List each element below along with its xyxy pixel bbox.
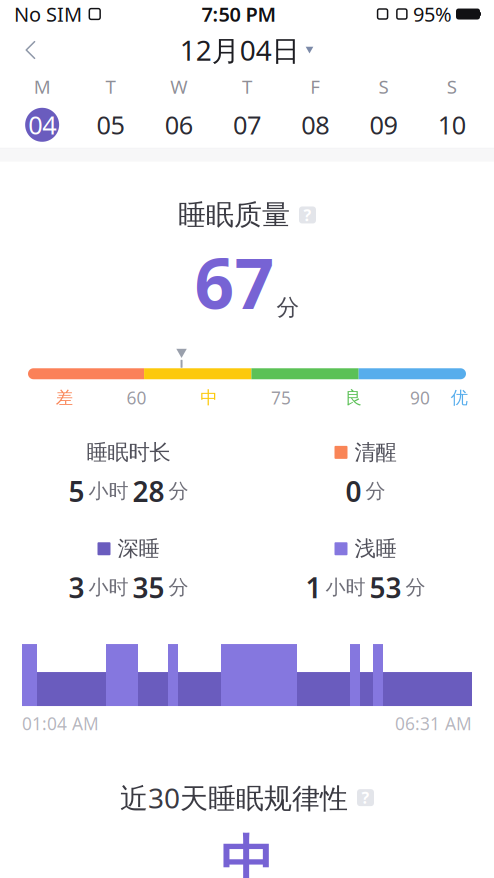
staticText: 分 [276, 293, 299, 321]
staticText: 睡眠质量 [178, 198, 290, 232]
button[interactable]: T [76, 74, 145, 142]
staticText: 小时 [88, 479, 128, 503]
button[interactable]: S [418, 74, 486, 142]
staticText: 05 [96, 108, 124, 142]
staticText: 浅睡 [354, 536, 396, 562]
staticText: 近30天睡眠规律性 [120, 779, 348, 816]
staticText: 10 [438, 108, 466, 142]
staticText: 小时 [88, 575, 128, 600]
staticText: 分 [405, 575, 425, 600]
staticText: 中 [220, 828, 273, 878]
staticText: 06 [165, 108, 193, 142]
button[interactable]: Back [8, 28, 54, 72]
button[interactable]: Help [299, 206, 316, 223]
staticText: 08 [301, 108, 329, 142]
staticText: 小时 [325, 575, 365, 600]
staticText: 90 [410, 386, 430, 409]
staticText: 7:50 PM [201, 1, 276, 27]
staticText: T [242, 74, 252, 99]
staticText: 04 [28, 108, 56, 142]
staticText: 0 [345, 472, 361, 510]
staticText: No SIM [14, 1, 82, 27]
staticText: S [379, 74, 389, 99]
staticText: 06:31 AM [395, 712, 472, 735]
staticText: 中 [200, 387, 217, 408]
staticText: 清醒 [354, 439, 396, 465]
staticText: 01:04 AM [22, 712, 99, 735]
staticText: 35 [132, 569, 164, 606]
button[interactable]: 12月04日 [174, 25, 320, 75]
button[interactable]: W [145, 74, 213, 142]
staticText: T [105, 74, 115, 99]
staticText: 3 [68, 569, 84, 606]
button[interactable]: S [349, 74, 418, 142]
staticText: 95% [413, 1, 452, 27]
staticText: 睡眠时长 [86, 439, 170, 465]
staticText: 60 [126, 386, 146, 409]
staticText: 09 [370, 108, 398, 142]
staticText: 良 [345, 387, 362, 408]
staticText: ? [361, 787, 369, 808]
button[interactable]: M [8, 74, 76, 142]
staticText: ? [303, 204, 311, 226]
button[interactable]: T [213, 74, 281, 142]
staticText: 5 [68, 472, 84, 510]
staticText: F [310, 74, 320, 99]
staticText: S [447, 74, 457, 99]
staticText: 07 [233, 108, 261, 142]
staticText: 28 [132, 472, 164, 510]
staticText: 67 [194, 236, 274, 328]
staticText: 优 [451, 387, 466, 408]
staticText: W [170, 74, 187, 99]
staticText: 深睡 [117, 536, 159, 562]
staticText: 12月04日 [180, 31, 300, 69]
staticText: M [34, 74, 51, 99]
staticText: 分 [168, 479, 188, 503]
button[interactable]: F [281, 74, 349, 142]
staticText: 1 [305, 569, 321, 606]
staticText: 分 [365, 479, 385, 503]
staticText: 分 [168, 575, 188, 600]
button[interactable]: Help [357, 789, 374, 806]
staticText: 53 [369, 569, 401, 606]
staticText: 75 [271, 386, 291, 409]
staticText: 差 [56, 387, 73, 408]
